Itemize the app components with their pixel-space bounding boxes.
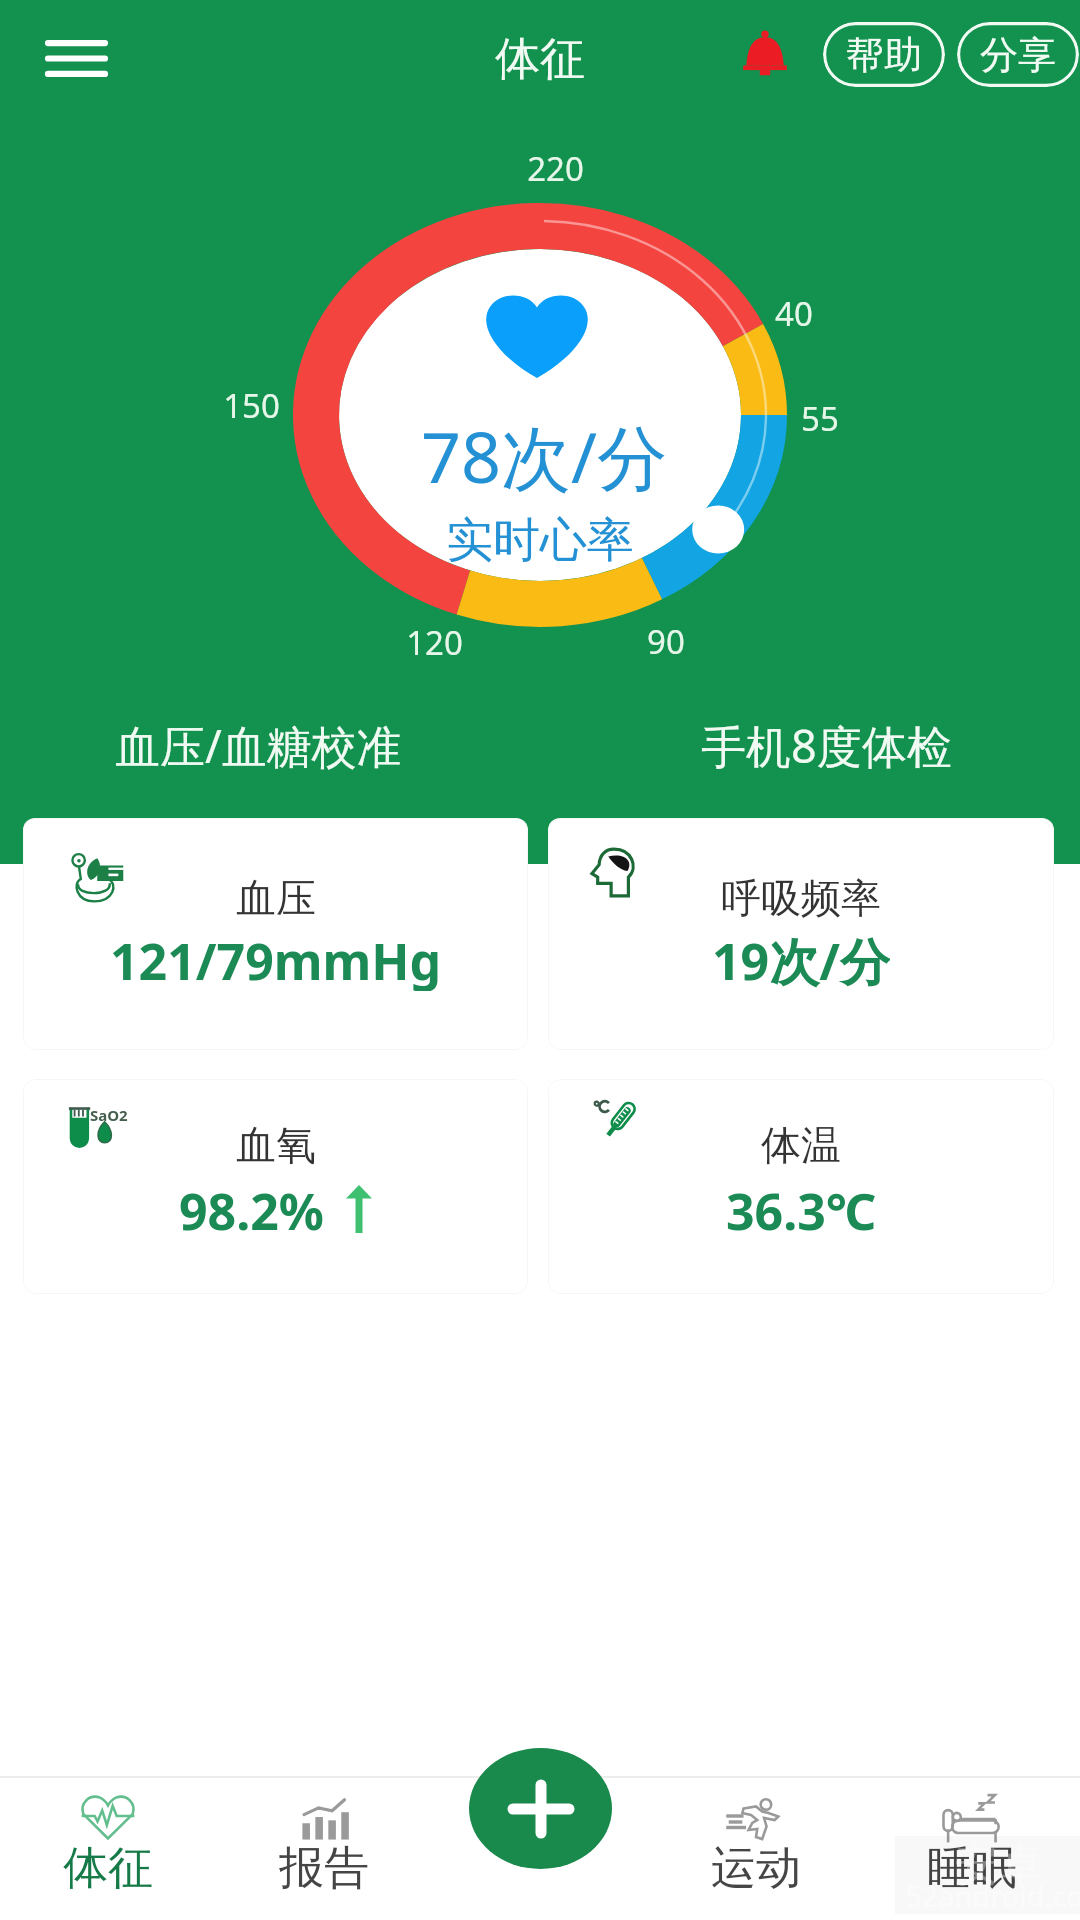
- button[interactable]: Notifications: [731, 18, 799, 92]
- button[interactable]: 睡眠: [864, 1778, 1080, 1920]
- staticText: 220: [527, 146, 584, 191]
- staticText: 55: [801, 396, 839, 441]
- staticText: 体温: [761, 1120, 841, 1170]
- staticText: 体征: [63, 1840, 153, 1897]
- button[interactable]: 血压: [23, 818, 528, 1050]
- staticText: SaO2: [90, 1105, 128, 1125]
- staticText: 40: [775, 291, 813, 336]
- button[interactable]: 血压/血糖校准: [0, 714, 516, 776]
- button[interactable]: SaO2: [23, 1079, 528, 1294]
- staticText: 52android.com: [905, 1876, 1080, 1915]
- staticText: 运动: [711, 1840, 801, 1897]
- staticText: 呼吸频率: [721, 873, 881, 923]
- staticText: 实时心率: [446, 511, 634, 570]
- staticText: 睡眠: [927, 1840, 1017, 1897]
- staticText: 150: [223, 383, 280, 428]
- button[interactable]: 运动: [648, 1778, 864, 1920]
- staticText: 体征: [495, 31, 585, 88]
- staticText: 血压: [236, 873, 316, 923]
- staticText: 78次/分: [421, 408, 668, 502]
- staticText: 分享: [980, 31, 1056, 79]
- button[interactable]: 呼吸频率: [548, 818, 1054, 1050]
- button[interactable]: 报告: [216, 1778, 432, 1920]
- staticText: 报告: [279, 1840, 369, 1897]
- staticText: 血氧: [236, 1120, 316, 1170]
- staticText: 19次/分: [712, 927, 890, 991]
- button[interactable]: Add: [469, 1748, 612, 1869]
- staticText: 98.2%: [179, 1177, 324, 1241]
- staticText: 血压/血糖校准: [115, 715, 402, 776]
- button[interactable]: 帮助: [823, 22, 945, 87]
- button[interactable]: Menu: [18, 10, 135, 107]
- staticText: 121/79mmHg: [110, 927, 442, 991]
- staticText: 手机8度体检: [701, 715, 952, 776]
- staticText: 120: [406, 620, 463, 665]
- button[interactable]: 体征: [0, 1778, 216, 1920]
- button[interactable]: 手机8度体检: [544, 714, 1080, 776]
- staticText: 36.3℃: [726, 1177, 877, 1241]
- staticText: 安卓: [955, 1838, 1043, 1893]
- button[interactable]: 分享: [957, 22, 1079, 87]
- button[interactable]: 体温: [548, 1079, 1054, 1294]
- staticText: 帮助: [846, 31, 922, 79]
- staticText: 90: [647, 619, 685, 664]
